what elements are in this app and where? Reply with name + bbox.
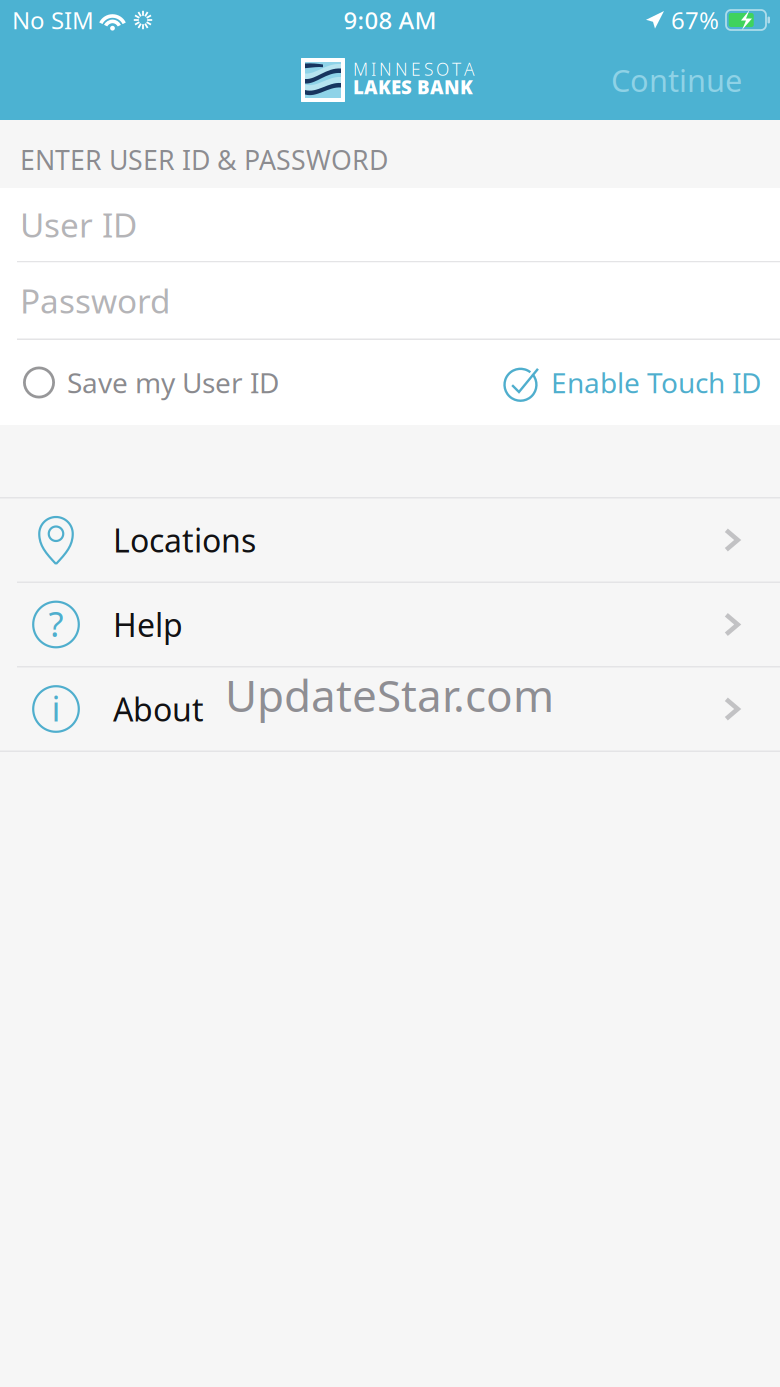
- button[interactable]: ?: [0, 583, 780, 666]
- staticText: LAKES BANK: [353, 75, 473, 99]
- button[interactable]: User ID: [0, 188, 780, 261]
- button[interactable]: i: [0, 667, 780, 750]
- button[interactable]: Continue: [592, 46, 761, 114]
- staticText: i: [51, 685, 60, 731]
- staticText: About: [113, 688, 204, 730]
- staticText: 9:08 AM: [343, 4, 436, 36]
- staticText: UpdateStar.com: [225, 666, 554, 724]
- staticText: Continue: [611, 60, 742, 100]
- staticText: Password: [20, 278, 171, 323]
- staticText: 67%: [671, 4, 719, 36]
- staticText: Enable Touch ID: [551, 364, 761, 401]
- button[interactable]: Save my User ID: [23, 340, 279, 425]
- staticText: ENTER USER ID & PASSWORD: [20, 142, 388, 177]
- staticText: ?: [48, 600, 63, 646]
- staticText: No SIM: [12, 4, 94, 36]
- button[interactable]: Enable Touch ID: [503, 340, 761, 425]
- staticText: Help: [113, 603, 183, 646]
- button[interactable]: Password: [0, 262, 780, 338]
- staticText: M I N N E S O T A: [353, 57, 475, 80]
- staticText: Locations: [113, 519, 256, 561]
- staticText: User ID: [20, 202, 137, 247]
- staticText: Save my User ID: [67, 364, 279, 401]
- button[interactable]: Locations: [0, 498, 780, 581]
